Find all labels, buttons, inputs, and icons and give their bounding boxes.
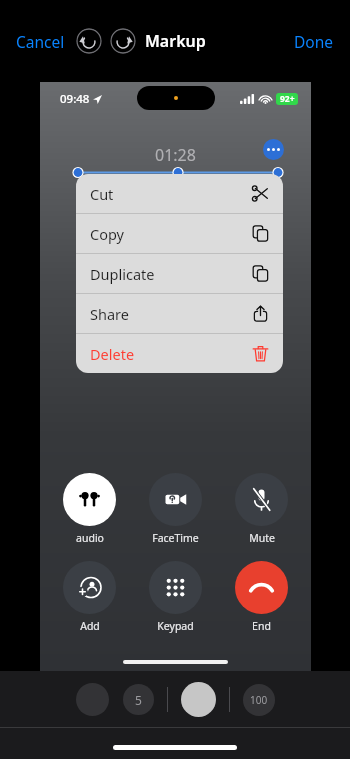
staticText: Add bbox=[80, 619, 100, 633]
button[interactable]: Cut bbox=[76, 174, 283, 214]
button[interactable] bbox=[235, 561, 288, 614]
button[interactable] bbox=[149, 473, 202, 526]
button[interactable]: Selected color bbox=[181, 682, 216, 717]
button[interactable] bbox=[63, 473, 116, 526]
staticText: 09:48 bbox=[60, 91, 90, 107]
staticText: 5 bbox=[135, 692, 142, 708]
button[interactable]: Delete bbox=[76, 334, 283, 373]
button[interactable]: Redo bbox=[110, 28, 136, 54]
staticText: 92+ bbox=[280, 93, 295, 105]
staticText: Keypad bbox=[157, 619, 194, 633]
staticText: Share bbox=[90, 304, 252, 324]
button[interactable]: Done bbox=[288, 25, 340, 58]
staticText: Mute bbox=[249, 531, 275, 545]
button[interactable] bbox=[149, 561, 202, 614]
staticText: Delete bbox=[90, 344, 252, 364]
button[interactable]: Duplicate bbox=[76, 254, 283, 294]
button[interactable]: More options bbox=[263, 139, 284, 160]
staticText: 100 bbox=[250, 693, 268, 707]
staticText: Duplicate bbox=[90, 264, 252, 284]
staticText: Markup bbox=[145, 30, 206, 52]
button[interactable]: Undo bbox=[76, 28, 102, 54]
staticText: End bbox=[252, 619, 271, 633]
staticText: audio bbox=[76, 531, 104, 545]
staticText: Cancel bbox=[16, 31, 65, 52]
button[interactable]: Stroke width 5 bbox=[123, 684, 154, 715]
button[interactable]: Opacity 100 bbox=[243, 684, 275, 716]
staticText: Done bbox=[294, 31, 334, 52]
staticText: 01:28 bbox=[155, 144, 196, 166]
button[interactable]: Share bbox=[76, 294, 283, 334]
button[interactable] bbox=[235, 473, 288, 526]
button[interactable] bbox=[63, 561, 116, 614]
staticText: Copy bbox=[90, 224, 252, 244]
staticText: Cut bbox=[90, 184, 252, 204]
staticText: FaceTime bbox=[152, 531, 199, 545]
button[interactable]: Copy bbox=[76, 214, 283, 254]
button[interactable]: Color bbox=[76, 683, 109, 716]
button[interactable]: Cancel bbox=[10, 25, 71, 58]
